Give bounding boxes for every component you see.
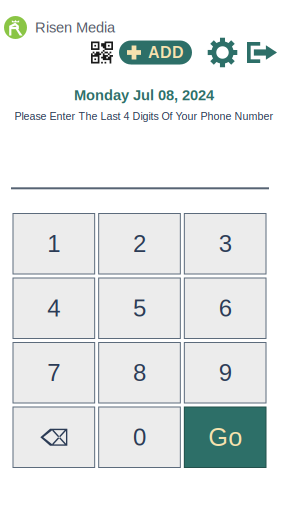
button[interactable]: 8: [98, 342, 181, 403]
staticText: 6: [219, 295, 232, 322]
button[interactable]: 4: [12, 277, 95, 339]
button[interactable]: 6: [184, 277, 266, 339]
button[interactable]: Delete: [12, 406, 95, 468]
staticText: 9: [219, 359, 232, 386]
button[interactable]: Sign out: [247, 37, 277, 68]
staticText: 0: [133, 424, 146, 451]
staticText: 5: [133, 295, 146, 322]
staticText: Please Enter The Last 4 Digits Of Your P…: [14, 110, 273, 122]
button[interactable]: 0: [98, 406, 181, 468]
staticText: Risen Media: [35, 19, 115, 36]
button[interactable]: 7: [12, 342, 95, 403]
staticText: 8: [133, 359, 146, 386]
button[interactable]: 3: [184, 213, 266, 274]
staticText: 3: [219, 230, 232, 257]
staticText: Go: [208, 423, 242, 451]
staticText: 2: [133, 230, 146, 257]
button[interactable]: 2: [98, 213, 181, 274]
button[interactable]: 1: [12, 213, 95, 274]
staticText: Monday Jul 08, 2024: [74, 87, 214, 103]
button[interactable]: Scan QR code: [91, 37, 113, 68]
staticText: 1: [47, 230, 60, 257]
button[interactable]: 9: [184, 342, 266, 403]
button[interactable]: 5: [98, 277, 181, 339]
button[interactable]: ADD: [119, 37, 192, 68]
staticText: ADD: [148, 44, 184, 61]
staticText: 4: [47, 295, 60, 322]
staticText: 7: [47, 359, 60, 386]
button[interactable]: Settings: [207, 37, 238, 68]
button[interactable]: Go: [184, 406, 266, 468]
